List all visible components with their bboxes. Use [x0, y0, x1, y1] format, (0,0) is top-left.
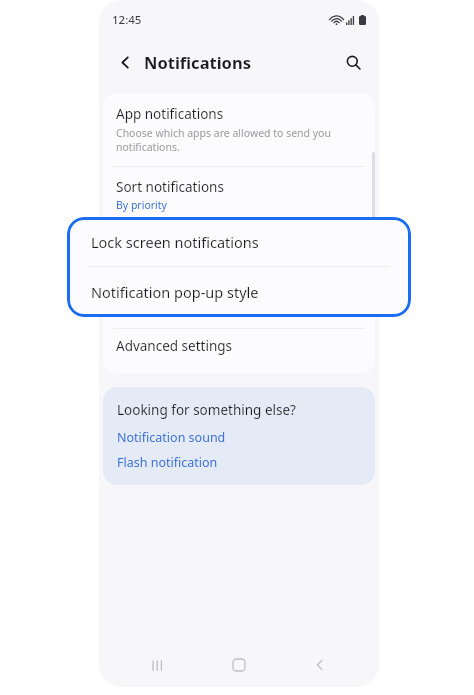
- staticText: Lock screen notifications: [91, 232, 259, 252]
- button[interactable]: Back: [110, 47, 140, 77]
- staticText: App notifications: [116, 105, 224, 123]
- button[interactable]: Flash notification: [117, 454, 218, 471]
- button[interactable]: Do not disturb: [103, 294, 375, 328]
- staticText: Notification pop-up style: [91, 282, 259, 302]
- button[interactable]: Notification pop-up style: [67, 267, 411, 317]
- staticText: Advanced settings: [116, 337, 233, 355]
- staticText: Notification sound: [117, 429, 226, 446]
- button[interactable]: Notification sound: [117, 429, 226, 446]
- button[interactable]: Recents: [136, 643, 180, 687]
- button[interactable]: Notification pop-up style: [103, 259, 375, 293]
- staticText: Lock screen notifications: [116, 232, 273, 250]
- staticText: Sort notifications: [116, 178, 224, 196]
- staticText: Looking for something else?: [117, 401, 296, 419]
- button[interactable]: Lock screen notifications: [103, 224, 375, 258]
- staticText: By priority: [116, 198, 167, 212]
- button[interactable]: Home: [217, 643, 261, 687]
- button[interactable]: Search: [337, 46, 369, 78]
- staticText: Notifications: [144, 51, 251, 73]
- button[interactable]: App notifications: [103, 93, 375, 166]
- staticText: Flash notification: [117, 454, 218, 471]
- staticText: 12:45: [112, 12, 142, 28]
- staticText: Choose which apps are allowed to send yo…: [116, 126, 331, 154]
- button[interactable]: Back: [298, 643, 342, 687]
- button[interactable]: Advanced settings: [103, 329, 375, 363]
- button[interactable]: Sort notifications: [103, 167, 375, 223]
- staticText: Do not disturb: [116, 302, 208, 320]
- button[interactable]: Lock screen notifications: [67, 217, 411, 266]
